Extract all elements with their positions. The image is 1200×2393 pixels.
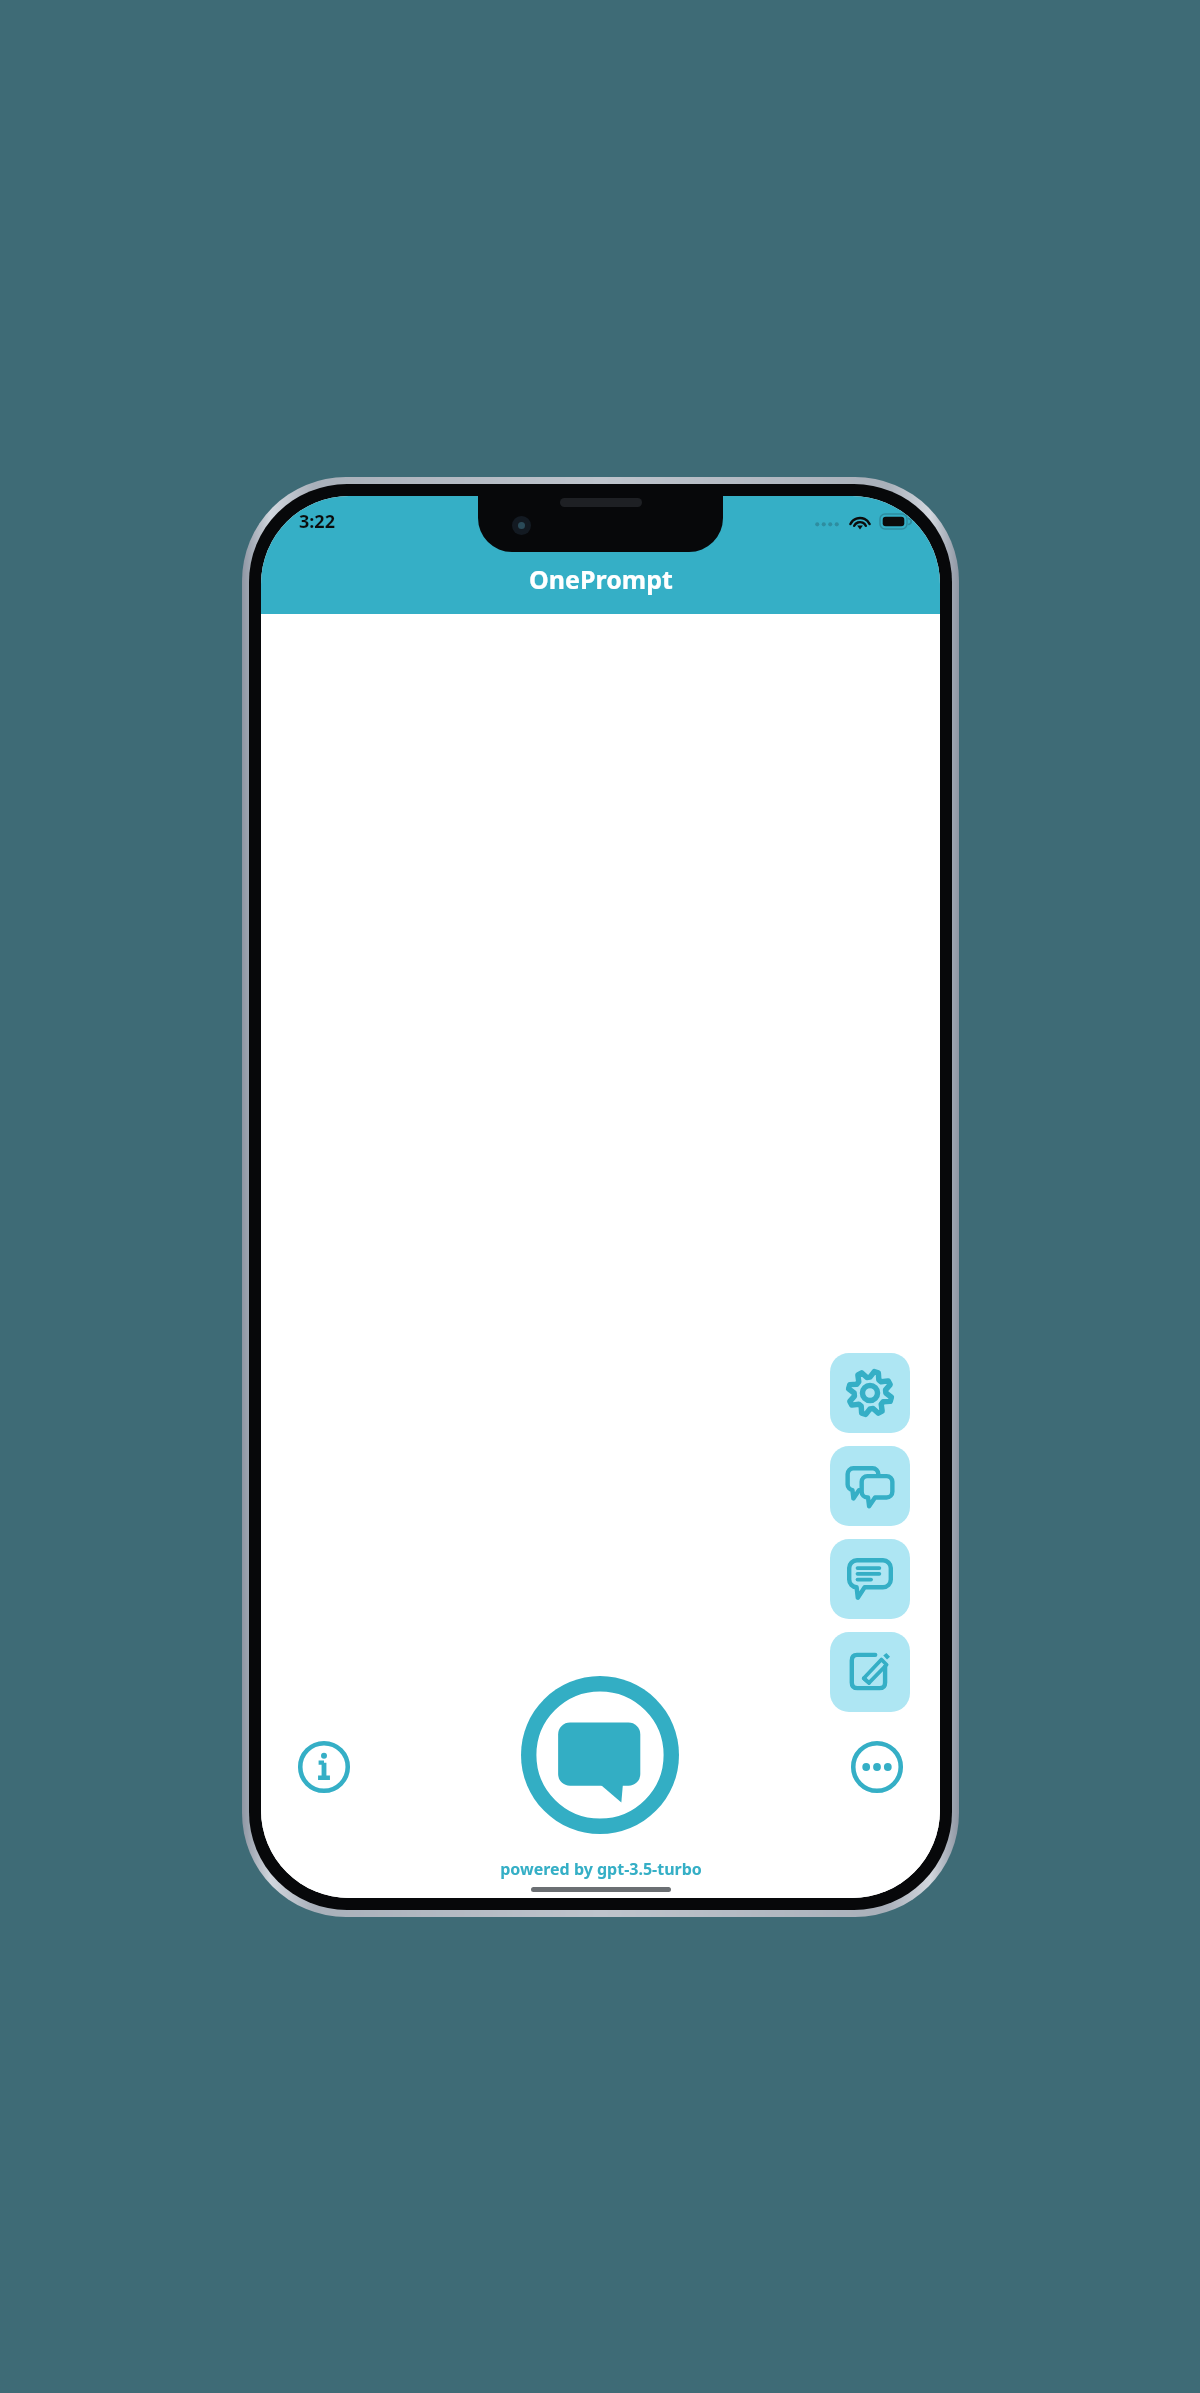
button[interactable]: Conversations bbox=[830, 1446, 910, 1526]
button[interactable]: More options bbox=[850, 1740, 904, 1794]
staticText: powered by gpt-3.5-turbo bbox=[500, 1858, 702, 1880]
button[interactable]: Information bbox=[297, 1740, 351, 1794]
staticText: OnePrompt bbox=[529, 562, 673, 596]
button[interactable]: New prompt bbox=[830, 1632, 910, 1712]
button[interactable]: Messages bbox=[830, 1539, 910, 1619]
button[interactable]: Start chat bbox=[521, 1676, 679, 1834]
staticText: 3:22 bbox=[299, 509, 335, 534]
button[interactable]: Settings bbox=[830, 1353, 910, 1433]
